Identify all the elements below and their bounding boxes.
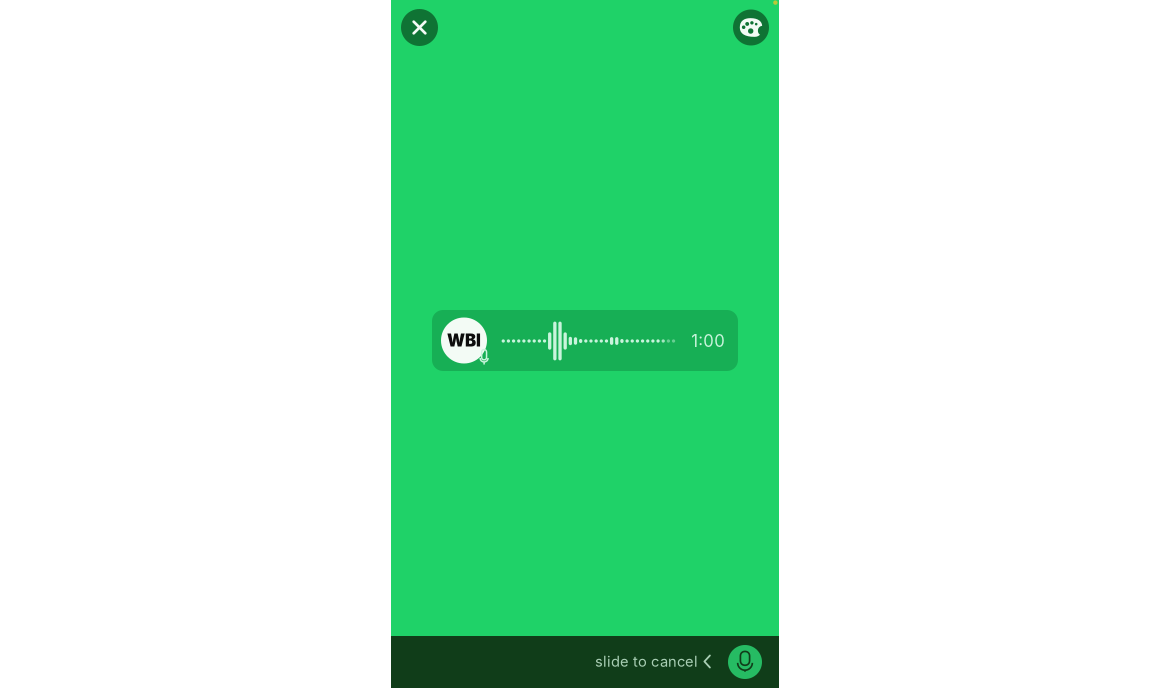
staticText: WBI — [447, 330, 481, 351]
button[interactable]: Change background colour — [733, 9, 769, 45]
button[interactable]: slide to cancel — [591, 647, 715, 676]
button[interactable]: Close — [401, 9, 438, 46]
button[interactable]: Record voice message — [728, 645, 762, 679]
staticText: slide to cancel — [595, 653, 698, 670]
staticText: 1:00 — [691, 331, 725, 351]
